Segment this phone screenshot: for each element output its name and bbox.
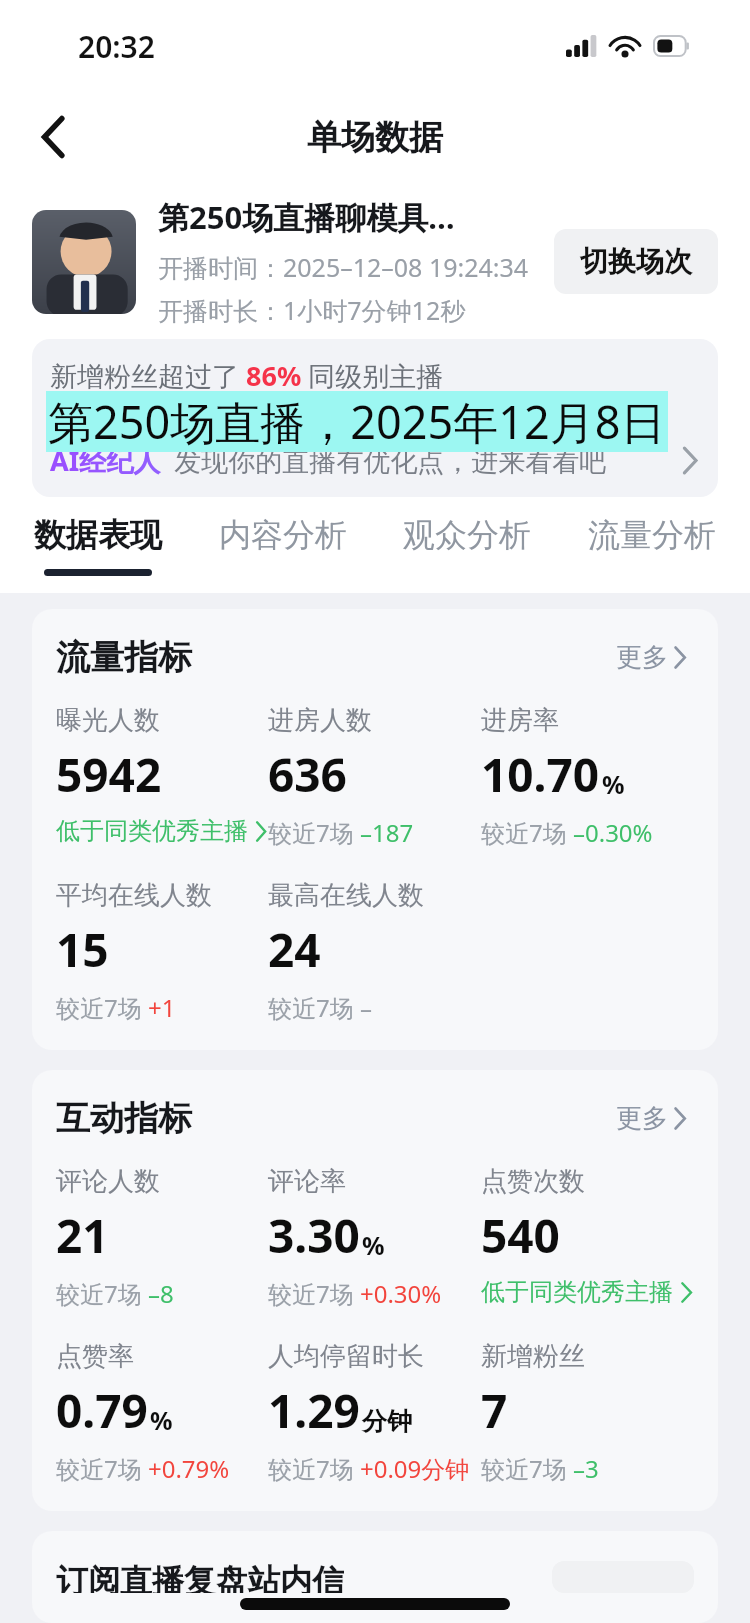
button[interactable]: 评论率 [268,1165,481,1310]
staticText: 低于同类优秀主播 [481,1277,673,1307]
button[interactable]: 平均在线人数 [56,879,268,1024]
button[interactable]: 更多 [610,1096,694,1141]
staticText: 0.79 [56,1379,148,1442]
button[interactable]: 最高在线人数 [268,879,481,1024]
staticText: 点赞率 [56,1340,134,1373]
staticText: 曝光人数 [56,704,160,737]
staticText: 评论率 [268,1165,346,1198]
staticText: 观众分析 [403,515,531,555]
staticText: 开播时长：1小时7分钟12秒 [158,293,466,327]
staticText: 较近7场 +1 [56,991,176,1024]
staticText: 较近7场 +0.79% [56,1452,230,1485]
staticText: 分钟 [362,1406,412,1437]
button[interactable]: 流量分析 [576,497,728,569]
staticText: % [362,1228,385,1262]
staticText: 7 [481,1379,508,1442]
staticText: 点赞次数 [481,1165,585,1198]
staticText: 人均停留时长 [268,1340,424,1373]
staticText: % [150,1403,173,1437]
button[interactable]: 更多 [610,635,694,680]
staticText: 低于同类优秀主播 [56,816,248,846]
button[interactable]: 新增粉丝 [481,1340,694,1485]
staticText: 较近7场 +0.30% [268,1277,442,1310]
staticText: 新增粉丝 [481,1340,585,1373]
button[interactable]: 观众分析 [391,497,543,569]
button[interactable]: 进房人数 [268,704,481,849]
staticText: 评论人数 [56,1165,160,1198]
button[interactable]: 曝光人数 [56,704,268,846]
staticText: 较近7场 –187 [268,816,414,849]
staticText: 第250场直播聊模具… [158,196,455,238]
staticText: 24 [268,918,321,981]
button[interactable]: 点赞率 [56,1340,268,1485]
button[interactable]: 数据表现 [22,497,174,576]
staticText: 最高在线人数 [268,879,424,912]
staticText: 进房人数 [268,704,372,737]
staticText: % [602,767,625,801]
staticText: 20:32 [78,26,155,67]
staticText: 数据表现 [34,515,162,555]
staticText: 互动指标 [56,1097,192,1140]
button[interactable]: 订阅直播复盘站内信 [32,1531,718,1623]
staticText: 切换场次 [580,244,692,279]
staticText: AI经纪人 发现你的直播有优化点，进来看看吧 [50,442,607,479]
staticText: 平均在线人数 [56,879,212,912]
staticText: 540 [481,1204,560,1267]
button[interactable]: Back [26,109,82,165]
staticText: 较近7场 –8 [56,1277,174,1310]
staticText: 15 [56,918,109,981]
button[interactable]: 内容分析 [207,497,359,569]
staticText: 开播时间：2025–12–08 19:24:34 [158,250,529,284]
staticText: 1.29 [268,1379,360,1442]
button[interactable]: 评论人数 [56,1165,268,1310]
staticText: 较近7场 –0.30% [481,816,653,849]
staticText: 21 [56,1204,109,1267]
staticText: 较近7场 –3 [481,1452,599,1485]
staticText: 进房率 [481,704,559,737]
button[interactable]: 点赞次数 [481,1165,694,1307]
staticText: 流量分析 [588,515,716,555]
staticText: 单场数据 [307,116,443,159]
staticText: 第250场直播，2025年12月8日 [48,391,666,452]
staticText: 更多 [616,1102,668,1135]
staticText: 3.30 [268,1204,360,1267]
staticText: 10.70 [481,743,600,806]
button[interactable]: 新增粉丝超过了 86% 同级别主播 [32,339,718,497]
staticText: 内容分析 [219,515,347,555]
button[interactable]: 进房率 [481,704,694,849]
button[interactable]: 切换场次 [554,229,718,294]
button[interactable]: 人均停留时长 [268,1340,481,1485]
staticText: 5942 [56,743,162,806]
staticText: 636 [268,743,347,806]
staticText: 订阅直播复盘站内信 [56,1561,344,1593]
staticText: 更多 [616,641,668,674]
staticText: 流量指标 [56,636,192,679]
staticText: 新增粉丝超过了 86% 同级别主播 [50,357,444,394]
staticText: 较近7场 – [268,991,372,1024]
staticText: 较近7场 +0.09分钟 [268,1452,470,1485]
